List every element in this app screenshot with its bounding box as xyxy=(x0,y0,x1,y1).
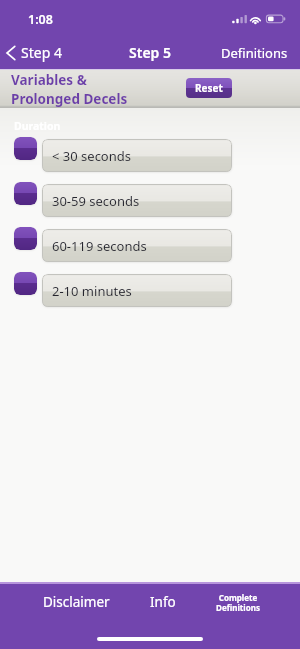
button[interactable]: Complete Definitions xyxy=(208,585,268,619)
button[interactable]: Toggle 2-10 minutes xyxy=(14,272,37,295)
staticText: Duration xyxy=(14,119,61,133)
button[interactable]: Toggle < 30 seconds xyxy=(14,137,37,160)
staticText: Prolonged Decels xyxy=(11,90,128,108)
staticText: 30-59 seconds xyxy=(52,192,140,210)
button[interactable]: 60-119 seconds xyxy=(42,229,232,262)
staticText: 60-119 seconds xyxy=(52,237,147,255)
button[interactable]: Toggle 30-59 seconds xyxy=(14,182,37,205)
staticText: 2-10 minutes xyxy=(52,282,132,300)
button[interactable]: 30-59 seconds xyxy=(42,184,232,217)
staticText: < 30 seconds xyxy=(52,147,131,165)
staticText: Complete Definitions xyxy=(216,592,260,613)
button[interactable]: < 30 seconds xyxy=(42,139,232,172)
staticText: 1:08 xyxy=(28,11,53,28)
button[interactable]: Reset xyxy=(186,78,232,98)
button[interactable]: Disclaimer xyxy=(36,585,116,619)
button[interactable]: Step 4 xyxy=(0,39,72,66)
staticText: Reset xyxy=(195,81,223,95)
staticText: Variables & xyxy=(11,71,87,89)
staticText: Step 4 xyxy=(21,43,62,62)
button[interactable]: Definitions xyxy=(209,38,300,68)
button[interactable]: Toggle 60-119 seconds xyxy=(14,227,37,250)
staticText: Info xyxy=(150,593,176,611)
staticText: Step 5 xyxy=(129,43,171,62)
staticText: Disclaimer xyxy=(43,593,110,611)
button[interactable]: 2-10 minutes xyxy=(42,274,232,307)
button[interactable]: Info xyxy=(133,585,193,619)
